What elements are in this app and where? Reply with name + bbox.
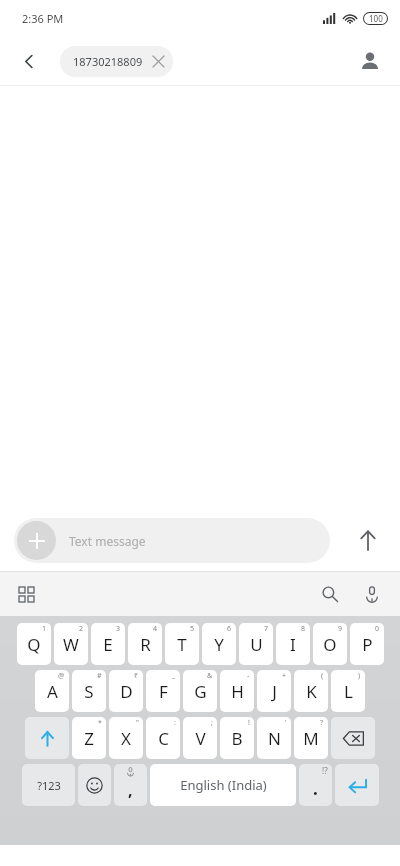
staticText: & (207, 671, 213, 681)
button[interactable]: Comma, voice input (114, 764, 147, 806)
staticText: !? (322, 765, 328, 776)
staticText: V (195, 727, 206, 750)
button[interactable]: * (72, 717, 106, 759)
staticText: A (47, 680, 58, 703)
staticText: Text message (69, 533, 146, 549)
button[interactable]: ?123 (22, 764, 75, 806)
button[interactable]: Voice input (354, 576, 390, 612)
staticText: 6 (227, 624, 232, 634)
button[interactable]: - (220, 670, 254, 712)
staticText: E (103, 633, 113, 656)
staticText: I (290, 633, 296, 656)
staticText: ! (248, 718, 250, 728)
staticText: ? (320, 718, 324, 728)
staticText: S (84, 680, 94, 703)
staticText: 2 (79, 624, 84, 634)
button[interactable]: 5 (165, 623, 199, 665)
staticText: , (128, 779, 133, 801)
staticText: 0 (375, 624, 380, 634)
button[interactable]: 7 (239, 623, 273, 665)
staticText: G (194, 680, 207, 703)
button[interactable]: ' (257, 717, 291, 759)
staticText: C (158, 727, 169, 750)
button[interactable]: # (72, 670, 106, 712)
staticText: ( (321, 671, 324, 681)
button[interactable]: Search (312, 576, 348, 612)
button[interactable]: 0 (350, 623, 384, 665)
staticText: . (313, 777, 318, 800)
staticText: 5 (190, 624, 195, 634)
staticText: W (63, 633, 79, 656)
button[interactable]: _ (146, 670, 180, 712)
staticText: R (140, 633, 151, 656)
button[interactable]: ; (183, 717, 217, 759)
button[interactable]: Add attachment (14, 518, 330, 563)
staticText: - (247, 671, 250, 681)
button[interactable]: 4 (128, 623, 162, 665)
button[interactable]: 9 (313, 623, 347, 665)
button[interactable]: Contact details (352, 43, 388, 79)
staticText: * (98, 718, 102, 728)
button[interactable] (78, 764, 111, 806)
button[interactable]: Keyboard menu (8, 576, 44, 612)
button[interactable]: " (109, 717, 143, 759)
staticText: 100 (369, 13, 383, 24)
button[interactable]: 18730218809 (60, 46, 173, 77)
staticText: 7 (264, 624, 269, 634)
staticText: L (344, 680, 353, 703)
staticText: ' (285, 718, 287, 728)
staticText: @ (58, 671, 65, 681)
staticText: 18730218809 (73, 54, 143, 69)
staticText: D (120, 680, 133, 703)
staticText: Y (214, 633, 224, 656)
staticText: " (136, 718, 139, 728)
staticText: 3 (116, 624, 121, 634)
staticText: U (250, 633, 263, 656)
staticText: B (231, 727, 243, 750)
staticText: ; (211, 718, 213, 728)
staticText: K (306, 680, 317, 703)
staticText: Z (84, 727, 94, 750)
staticText: M (303, 727, 319, 750)
button[interactable]: 6 (202, 623, 236, 665)
button[interactable]: ) (331, 670, 365, 712)
staticText: ?123 (37, 778, 61, 793)
staticText: P (362, 633, 373, 656)
staticText: J (272, 680, 277, 703)
button[interactable] (331, 717, 375, 759)
button[interactable]: + (257, 670, 291, 712)
staticText: 8 (301, 624, 306, 634)
button[interactable]: English (India) (150, 764, 296, 806)
button[interactable]: !? (299, 764, 332, 806)
button[interactable]: : (146, 717, 180, 759)
staticText: : (174, 718, 176, 728)
button[interactable]: ₹ (109, 670, 143, 712)
button[interactable] (25, 717, 69, 759)
staticText: 4 (153, 624, 158, 634)
button[interactable]: ? (294, 717, 328, 759)
staticText: ₹ (134, 671, 139, 681)
button[interactable]: Add attachment (17, 521, 56, 560)
button[interactable]: @ (35, 670, 69, 712)
button[interactable]: Back (12, 44, 46, 78)
staticText: 2:36 PM (22, 11, 64, 26)
button[interactable]: ( (294, 670, 328, 712)
button[interactable]: ! (220, 717, 254, 759)
staticText: _ (172, 671, 176, 681)
staticText: English (India) (180, 776, 267, 794)
staticText: 9 (338, 624, 343, 634)
staticText: Q (27, 633, 41, 656)
staticText: X (121, 727, 131, 750)
button[interactable]: 8 (276, 623, 310, 665)
button[interactable] (335, 764, 379, 806)
button[interactable]: & (183, 670, 217, 712)
staticText: ) (358, 671, 361, 681)
button[interactable]: 3 (91, 623, 125, 665)
button[interactable]: 1 (17, 623, 51, 665)
staticText: O (323, 633, 337, 656)
button[interactable]: 2 (54, 623, 88, 665)
staticText: H (231, 680, 244, 703)
staticText: F (159, 680, 168, 703)
button[interactable]: Send (348, 520, 388, 560)
staticText: # (97, 671, 102, 681)
